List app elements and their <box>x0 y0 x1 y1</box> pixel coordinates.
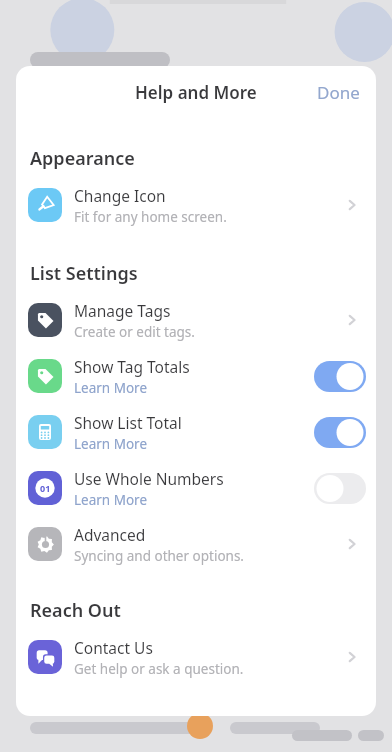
button[interactable]: Show Tag Totals <box>16 348 376 404</box>
staticText: Learn More <box>74 379 148 397</box>
staticText: Fit for any home screen. <box>74 208 227 226</box>
staticText: Manage Tags <box>74 300 171 321</box>
staticText: Change Icon <box>74 185 166 206</box>
staticText: 01 <box>40 482 51 494</box>
staticText: Help and More <box>135 81 257 104</box>
button[interactable]: Toggle Use Whole Numbers <box>314 473 366 504</box>
button[interactable]: Done <box>301 73 376 112</box>
staticText: Syncing and other options. <box>74 547 244 565</box>
staticText: Get help or ask a question. <box>74 660 244 678</box>
button[interactable]: Show List Total <box>16 404 376 460</box>
button[interactable]: Contact Us <box>16 629 376 685</box>
other: Open Contact Us <box>338 643 366 671</box>
staticText: Appearance <box>30 146 135 171</box>
button[interactable]: Toggle Show List Total <box>314 417 366 448</box>
staticText: List Settings <box>30 261 138 286</box>
staticText: Use Whole Numbers <box>74 468 224 489</box>
staticText: Advanced <box>74 524 146 545</box>
button[interactable]: Change Icon <box>16 177 376 233</box>
staticText: Reach Out <box>30 598 121 623</box>
staticText: Show Tag Totals <box>74 356 190 377</box>
staticText: Learn More <box>74 435 148 453</box>
other: Open Manage Tags <box>338 306 366 334</box>
other: Open Advanced <box>338 530 366 558</box>
button[interactable]: Manage Tags <box>16 292 376 348</box>
other: Open Change Icon <box>338 191 366 219</box>
button[interactable]: 01 <box>16 460 376 516</box>
staticText: Show List Total <box>74 412 182 433</box>
button[interactable]: Advanced <box>16 516 376 572</box>
staticText: Contact Us <box>74 637 153 658</box>
staticText: Learn More <box>74 491 148 509</box>
staticText: Create or edit tags. <box>74 323 195 341</box>
staticText: Done <box>317 81 360 104</box>
button[interactable]: Toggle Show Tag Totals <box>314 361 366 392</box>
